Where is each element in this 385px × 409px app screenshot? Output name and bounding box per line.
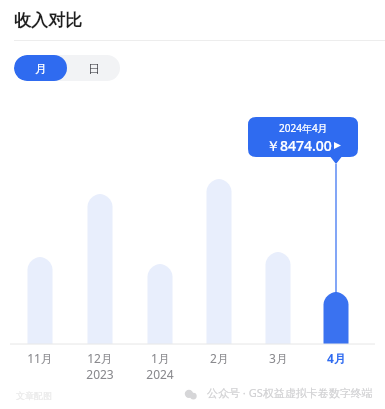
button[interactable]: 1月	[134, 350, 186, 382]
button[interactable]: 2月	[193, 350, 245, 366]
staticText: 1月	[151, 350, 170, 366]
button[interactable]: 日	[67, 55, 120, 81]
button[interactable]: 3月	[252, 350, 304, 366]
staticText: 收入对比	[14, 10, 82, 31]
button[interactable]: 11月	[14, 350, 66, 366]
staticText: 公众号 · GS权益虚拟卡卷数字终端	[207, 385, 373, 400]
button[interactable]: 月	[14, 55, 67, 81]
staticText: 2月	[210, 350, 229, 366]
button[interactable]: 2024年4月	[248, 117, 358, 164]
button[interactable]: 4月	[310, 350, 362, 366]
staticText: ￥8474.00	[266, 136, 332, 155]
staticText: 2023	[86, 366, 114, 382]
staticText: 文章配图	[16, 390, 52, 401]
staticText: 4月	[327, 350, 346, 366]
staticText: 12月	[87, 350, 113, 366]
staticText: 月	[35, 61, 47, 76]
staticText: 2024	[146, 366, 174, 382]
staticText: 日	[88, 61, 100, 76]
button[interactable]: 12月	[74, 350, 126, 382]
staticText: 2024年4月	[279, 121, 328, 135]
staticText: 3月	[269, 350, 288, 366]
staticText: 11月	[27, 350, 53, 366]
